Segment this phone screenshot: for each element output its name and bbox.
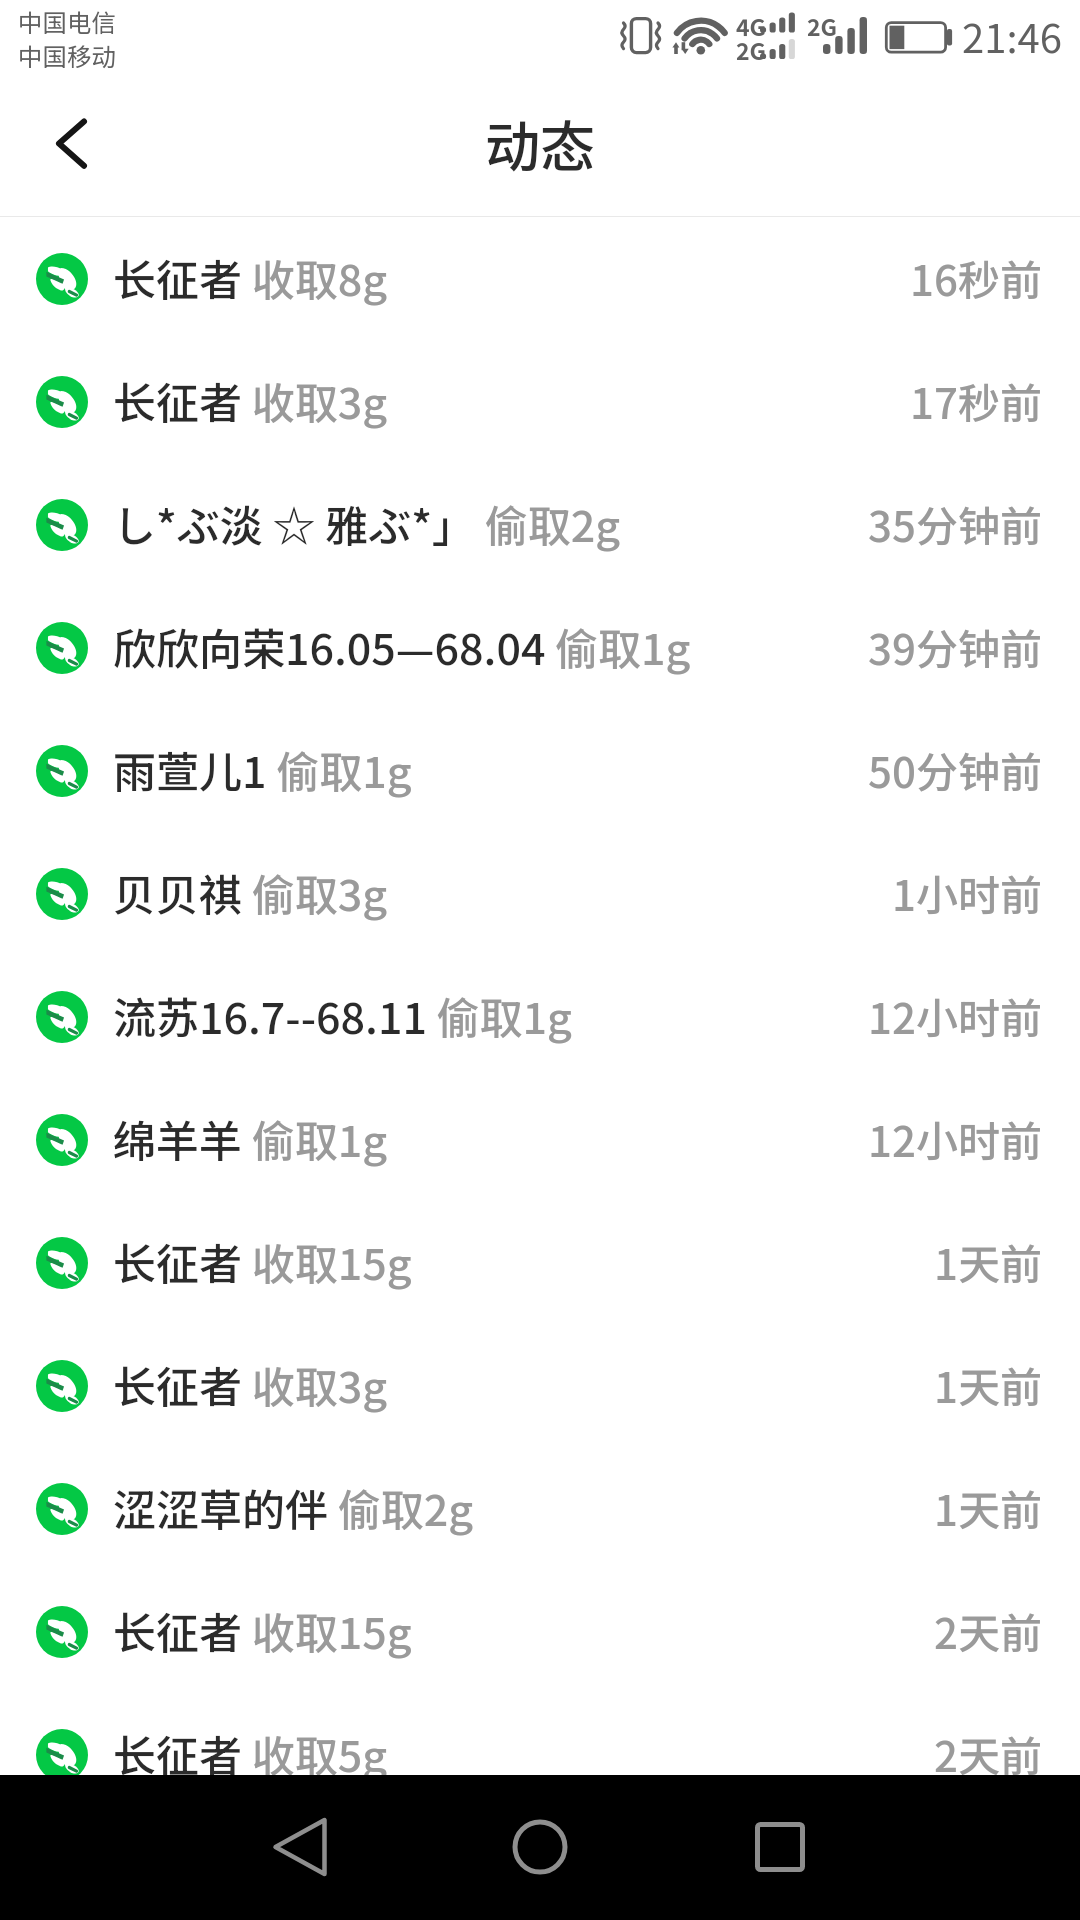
staticText: 1小时前 (892, 862, 1042, 923)
staticText: 1天前 (934, 1231, 1042, 1292)
staticText: 长征者 收取3g (113, 369, 388, 431)
staticText: 中国电信 (18, 4, 116, 39)
staticText: 2G (736, 33, 767, 66)
button[interactable]: Back (240, 1787, 360, 1907)
staticText: 欣欣向荣16.05—68.04 偷取1g (113, 615, 691, 677)
staticText: 贝贝祺 偷取3g (113, 861, 388, 923)
staticText: 4G (736, 9, 767, 42)
staticText: 2G (807, 9, 838, 42)
staticText: 50分钟前 (868, 739, 1042, 800)
staticText: 16秒前 (910, 247, 1042, 308)
button[interactable]: 长征者 收取3g (0, 1324, 1080, 1447)
button[interactable]: Back (14, 94, 130, 210)
button[interactable]: 长征者 收取5g (0, 1693, 1080, 1816)
staticText: 流苏16.7--68.11 偷取1g (113, 984, 572, 1046)
button[interactable]: 雨萱儿1 偷取1g (0, 709, 1080, 832)
staticText: 长征者 收取5g (113, 1722, 388, 1784)
staticText: 1天前 (934, 1477, 1042, 1538)
staticText: 长征者 收取8g (113, 246, 388, 308)
button[interactable]: し*ぶ淡 ☆ 雅ぶ*」 偷取2g (0, 463, 1080, 586)
button[interactable]: 绵羊羊 偷取1g (0, 1078, 1080, 1201)
staticText: 动态 (485, 103, 596, 183)
staticText: 长征者 收取15g (113, 1230, 412, 1292)
staticText: 雨萱儿1 偷取1g (113, 738, 412, 800)
staticText: 39分钟前 (868, 616, 1042, 677)
button[interactable]: 贝贝祺 偷取3g (0, 832, 1080, 955)
staticText: 21:46 (962, 7, 1062, 65)
button[interactable]: 涩涩草的伴 偷取2g (0, 1447, 1080, 1570)
button[interactable]: 长征者 收取15g (0, 1570, 1080, 1693)
staticText: 长征者 收取3g (113, 1353, 388, 1415)
staticText: 17秒前 (910, 370, 1042, 431)
staticText: 2天前 (934, 1600, 1042, 1661)
staticText: 中国移动 (18, 38, 116, 73)
button[interactable]: 长征者 收取8g (0, 217, 1080, 340)
button[interactable]: Recent apps (720, 1787, 840, 1907)
staticText: 35分钟前 (868, 493, 1042, 554)
button[interactable]: 欣欣向荣16.05—68.04 偷取1g (0, 586, 1080, 709)
staticText: 2天前 (934, 1723, 1042, 1784)
button[interactable]: 长征者 收取15g (0, 1201, 1080, 1324)
staticText: 长征者 收取15g (113, 1599, 412, 1661)
button[interactable]: Home (480, 1787, 600, 1907)
button[interactable]: 长征者 收取3g (0, 340, 1080, 463)
staticText: 12小时前 (868, 1108, 1042, 1169)
staticText: 绵羊羊 偷取1g (113, 1107, 388, 1169)
staticText: 涩涩草的伴 偷取2g (113, 1476, 474, 1538)
staticText: 12小时前 (868, 985, 1042, 1046)
staticText: 1天前 (934, 1354, 1042, 1415)
staticText: し*ぶ淡 ☆ 雅ぶ*」 偷取2g (113, 492, 621, 554)
button[interactable]: 流苏16.7--68.11 偷取1g (0, 955, 1080, 1078)
